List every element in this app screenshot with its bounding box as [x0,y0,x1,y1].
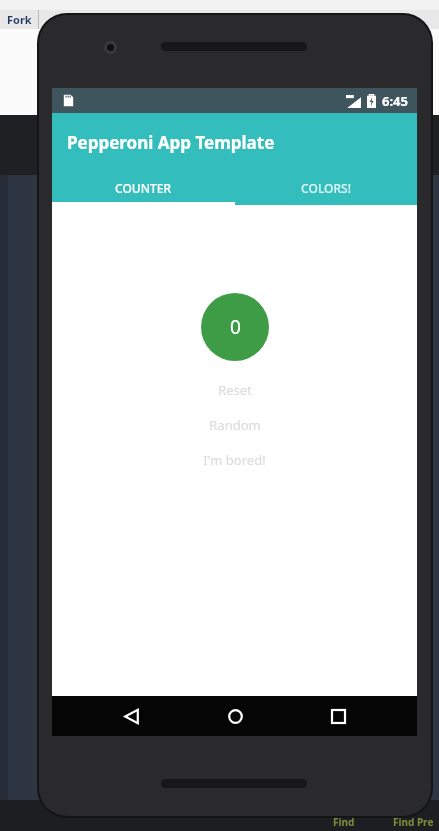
staticText: Find Pre [393,815,434,829]
staticText: Fork [7,12,32,27]
staticText: 69 [54,12,67,27]
staticText: Reset [218,381,252,399]
staticText: COLORS! [301,180,351,196]
button[interactable]: Back [107,696,155,736]
staticText: 0 [230,314,241,340]
button[interactable]: Home [211,696,259,736]
staticText: Find [333,815,355,829]
staticText: 6:45 [382,92,408,110]
staticText: I'm bored! [203,451,266,469]
button[interactable]: Recent apps [314,696,362,736]
button[interactable]: COLORS! [234,171,417,205]
staticText: Pepperoni App Template [67,131,275,154]
staticText: Random [209,416,261,434]
staticText: COUNTER [115,180,171,196]
button[interactable]: Reset [52,379,417,401]
button[interactable]: COUNTER [52,171,234,205]
button[interactable]: I'm bored! [52,449,417,471]
button[interactable]: 0 [201,293,269,361]
button[interactable]: Random [52,414,417,436]
